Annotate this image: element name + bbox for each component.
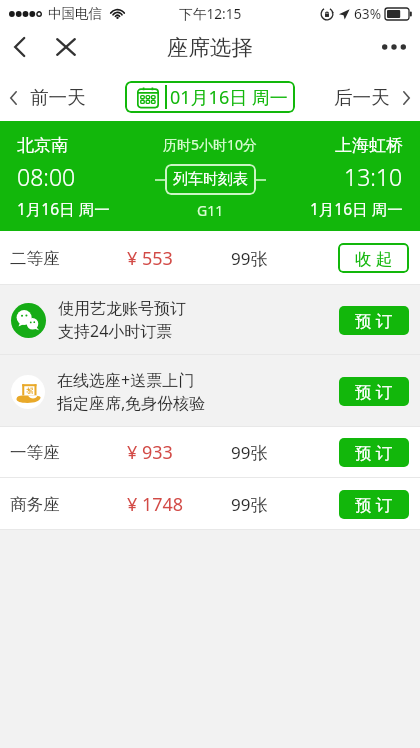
- button[interactable]: 预 订: [339, 490, 409, 519]
- staticText: 08:00: [17, 161, 76, 192]
- button[interactable]: 01月16日 周一: [125, 81, 295, 113]
- staticText: 99张: [231, 441, 268, 464]
- button[interactable]: 前一天: [0, 80, 96, 115]
- staticText: 下午12:15: [179, 4, 242, 23]
- staticText: 预 订: [355, 493, 393, 516]
- staticText: 99张: [231, 247, 268, 270]
- staticText: 上海虹桥: [335, 135, 403, 156]
- staticText: 预 订: [355, 380, 393, 403]
- button[interactable]: 后一天: [324, 80, 420, 115]
- staticText: 63%: [354, 4, 382, 23]
- button[interactable]: 预 订: [339, 306, 409, 335]
- button[interactable]: 预 订: [339, 377, 409, 406]
- staticText: 座席选择: [167, 34, 253, 61]
- staticText: ¥ 1748: [127, 492, 184, 517]
- staticText: 列车时刻表: [173, 170, 248, 189]
- staticText: 13:10: [344, 161, 403, 192]
- button[interactable]: 列车时刻表: [165, 164, 256, 195]
- staticText: 1月16日 周一: [310, 198, 403, 219]
- button[interactable]: Back: [0, 26, 38, 68]
- button[interactable]: 二等座: [0, 231, 420, 285]
- staticText: 中国电信: [48, 5, 102, 22]
- staticText: 使用艺龙账号预订 支持24小时订票: [58, 299, 186, 342]
- staticText: 后一天: [334, 86, 390, 109]
- staticText: ¥ 553: [127, 246, 173, 271]
- staticText: 预 订: [355, 309, 393, 332]
- button[interactable]: 一等座: [0, 427, 420, 478]
- button[interactable]: 在线选座+送票上门 指定座席,免身份核验: [0, 355, 420, 427]
- staticText: 01月16日 周一: [170, 85, 288, 110]
- staticText: 1月16日 周一: [17, 198, 110, 219]
- staticText: 预 订: [355, 441, 393, 464]
- staticText: 商务座: [10, 494, 60, 515]
- staticText: G11: [197, 201, 224, 220]
- staticText: ¥ 933: [127, 440, 173, 465]
- staticText: 99张: [231, 493, 268, 516]
- staticText: 历时5小时10分: [163, 135, 258, 154]
- button[interactable]: 收 起: [338, 243, 409, 273]
- button[interactable]: More options: [368, 26, 420, 68]
- staticText: 二等座: [10, 248, 60, 269]
- staticText: 在线选座+送票上门 指定座席,免身份核验: [57, 369, 206, 414]
- staticText: 北京南: [17, 135, 68, 156]
- button[interactable]: 预 订: [339, 438, 409, 467]
- button[interactable]: 商务座: [0, 478, 420, 530]
- staticText: 收 起: [355, 247, 393, 270]
- staticText: 前一天: [30, 86, 86, 109]
- button[interactable]: Close: [46, 26, 86, 68]
- button[interactable]: 使用艺龙账号预订 支持24小时订票: [0, 285, 420, 355]
- staticText: 一等座: [10, 442, 60, 463]
